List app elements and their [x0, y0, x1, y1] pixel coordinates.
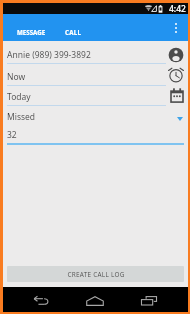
staticText: 4:42	[169, 3, 186, 14]
button[interactable]: Recents	[129, 287, 168, 312]
button[interactable]: Today	[3, 87, 188, 107]
button[interactable]: CALL	[59, 14, 88, 41]
button[interactable]: CREATE CALL LOG	[7, 266, 184, 282]
staticText: Missed	[7, 111, 36, 123]
staticText: CALL	[65, 28, 82, 36]
button[interactable]: Home	[76, 287, 114, 312]
staticText: Now	[7, 71, 26, 83]
staticText: 32	[7, 129, 17, 141]
button[interactable]: Annie (989) 399-3892	[3, 45, 188, 65]
button[interactable]: 32	[3, 125, 188, 149]
button[interactable]: More options	[167, 14, 185, 41]
button[interactable]: MESSAGE	[11, 14, 51, 41]
staticText: Annie (989) 399-3892	[7, 49, 91, 61]
staticText: MESSAGE	[17, 28, 46, 36]
staticText: Today	[7, 91, 31, 103]
button[interactable]: Missed	[3, 107, 188, 127]
button[interactable]: Now	[3, 67, 188, 87]
button[interactable]: Back	[21, 287, 60, 312]
staticText: CREATE CALL LOG	[67, 270, 125, 279]
